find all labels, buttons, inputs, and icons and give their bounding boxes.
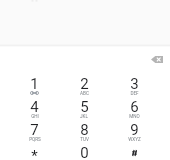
staticText: DEF	[130, 91, 139, 96]
staticText: 8	[80, 121, 89, 139]
staticText: JKL	[80, 114, 88, 119]
staticText: 1	[30, 75, 39, 93]
button[interactable]: 5	[59, 98, 109, 121]
button[interactable]: 1	[10, 75, 59, 98]
staticText: TUV	[80, 137, 89, 142]
staticText: *	[31, 147, 38, 160]
staticText: ABC	[80, 91, 89, 96]
button[interactable]: 2	[59, 75, 109, 98]
button[interactable]: 8	[59, 121, 109, 144]
button[interactable]: 4	[10, 98, 59, 121]
staticText: 3	[130, 75, 139, 93]
staticText: MNO	[129, 114, 140, 119]
button[interactable]: 3	[109, 75, 159, 98]
button[interactable]	[109, 144, 159, 160]
staticText: 6	[130, 98, 139, 116]
staticText: 0	[80, 144, 89, 160]
button[interactable]: 9	[109, 121, 159, 144]
button[interactable]: 0	[59, 144, 109, 160]
button[interactable]: 6	[109, 98, 159, 121]
staticText: GHI	[31, 114, 39, 119]
staticText: 9	[130, 121, 139, 139]
button[interactable]: 7	[10, 121, 59, 144]
staticText: 2	[80, 75, 89, 93]
staticText: 7	[30, 121, 39, 139]
staticText: WXYZ	[128, 137, 141, 142]
staticText: 4	[30, 98, 39, 116]
button[interactable]: *	[10, 144, 59, 160]
staticText: 5	[80, 98, 89, 116]
button[interactable]: Backspace	[149, 51, 165, 67]
staticText: PQRS	[29, 137, 41, 142]
